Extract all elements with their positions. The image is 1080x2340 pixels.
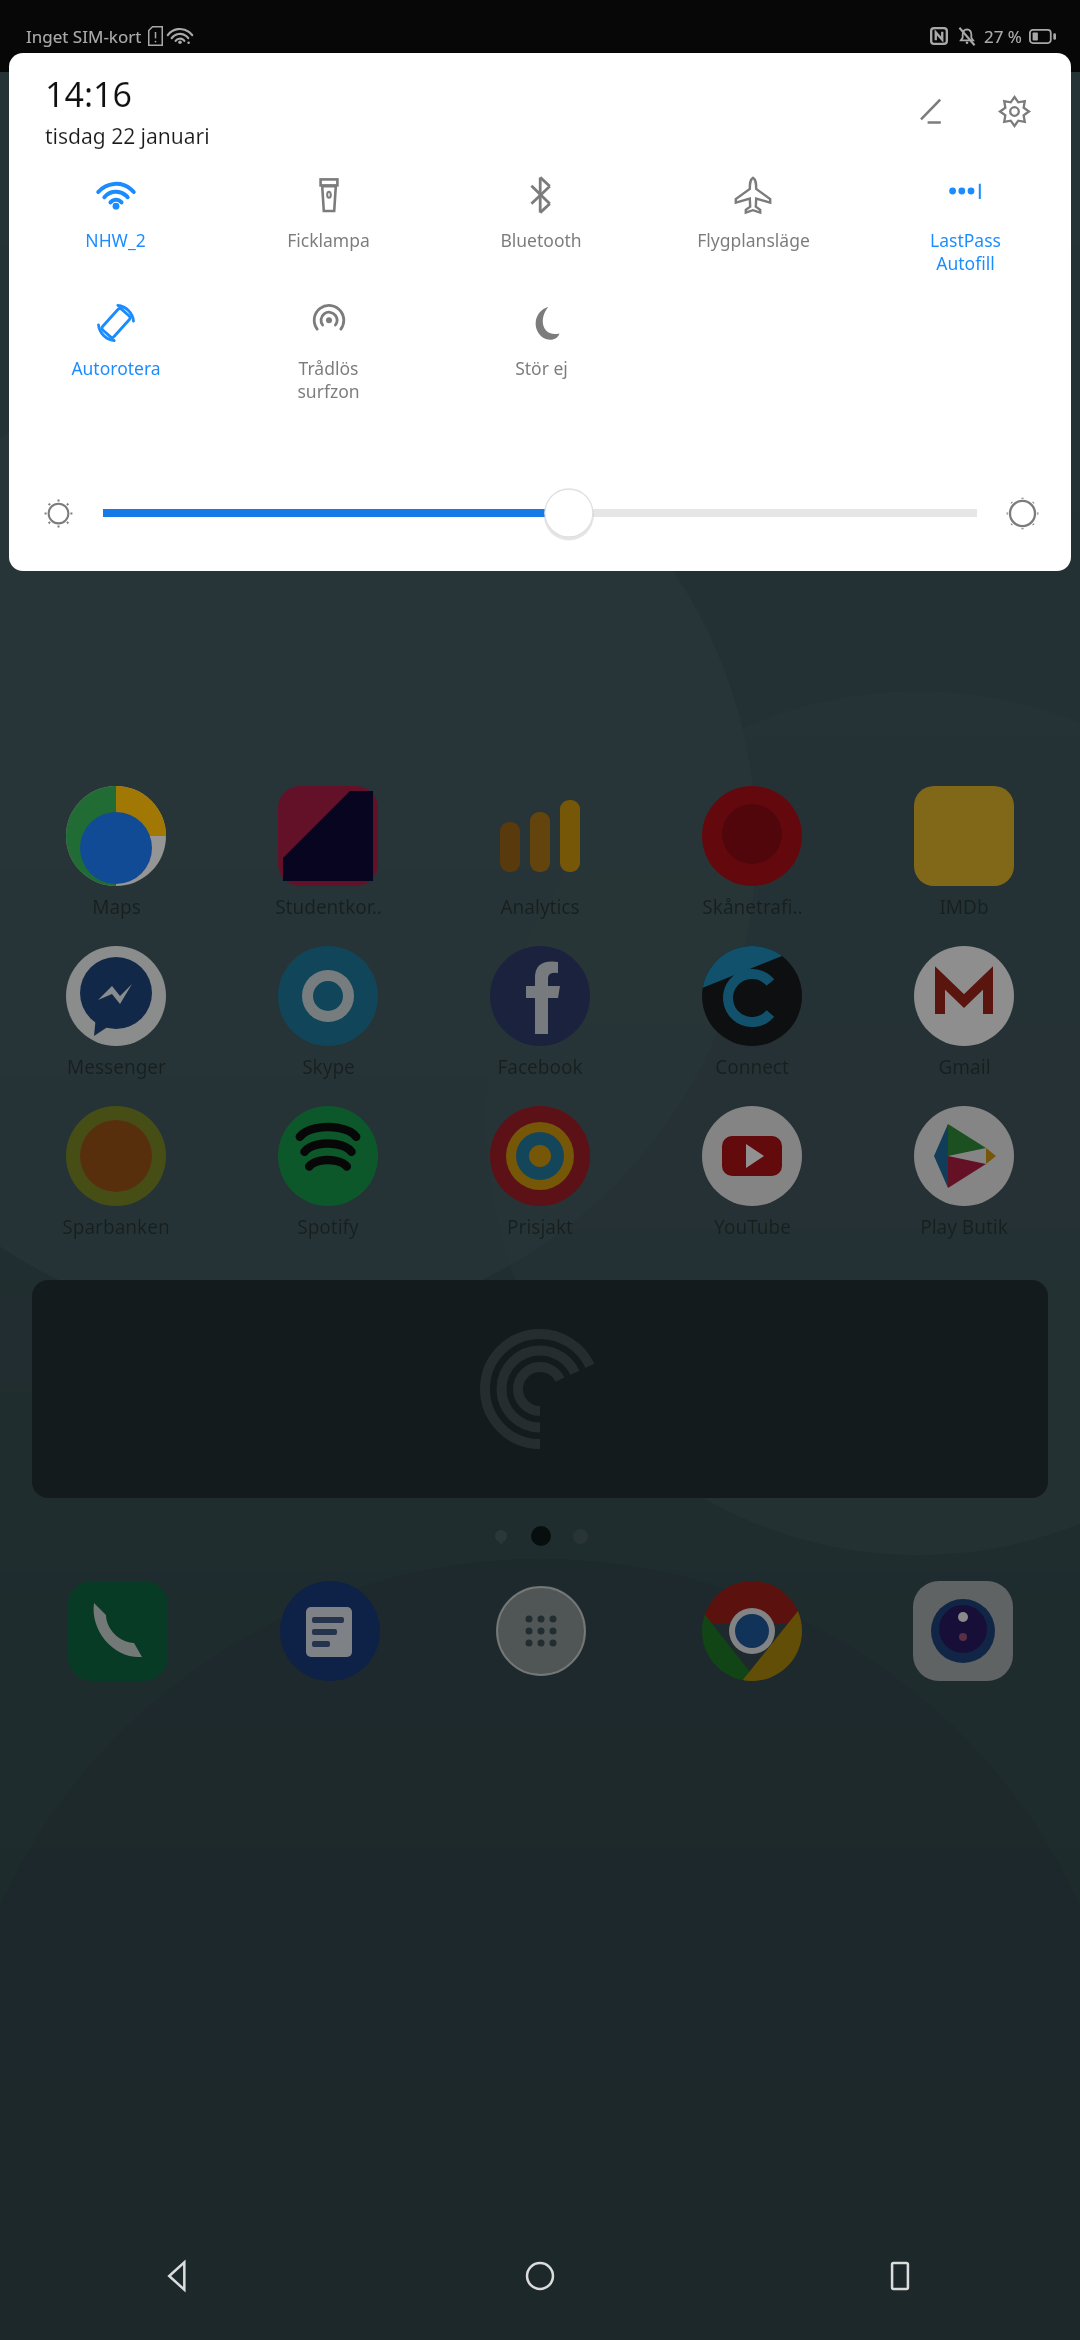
staticText: Autorotera: [71, 356, 161, 380]
button[interactable]: Skånetrafi..: [646, 786, 858, 920]
staticText: Flygplansläge: [697, 228, 810, 252]
button[interactable]: Analytics: [434, 786, 646, 920]
button[interactable]: Messenger: [10, 946, 222, 1080]
staticText: Spotify: [297, 1214, 359, 1240]
button[interactable]: Recents: [720, 2212, 1080, 2340]
staticText: Messenger: [67, 1054, 166, 1080]
staticText: Inget SIM-kort: [26, 25, 142, 48]
staticText: tisdag 22 januari: [45, 122, 210, 151]
staticText: Trådlös surfzon: [297, 356, 360, 403]
staticText: YouTube: [714, 1214, 791, 1240]
button[interactable]: All apps: [435, 1572, 646, 1690]
button[interactable]: Messages: [224, 1572, 435, 1690]
staticText: Bluetooth: [500, 228, 582, 252]
button[interactable]: Chrome: [646, 1572, 857, 1690]
button[interactable]: Studentkor..: [222, 786, 434, 920]
staticText: LastPass Autofill: [930, 228, 1001, 275]
button[interactable]: Connect: [646, 946, 858, 1080]
staticText: Skånetrafi..: [702, 894, 803, 920]
button[interactable]: Settings: [987, 84, 1041, 138]
button[interactable]: Gmail: [858, 946, 1070, 1080]
button[interactable]: Spotify: [222, 1106, 434, 1240]
button[interactable]: YouTube: [646, 1106, 858, 1240]
button[interactable]: NHW_2: [9, 169, 222, 289]
button[interactable]: Ficklampa: [222, 169, 435, 289]
staticText: Connect: [715, 1054, 789, 1080]
button[interactable]: LastPass Autofill: [859, 169, 1071, 289]
button[interactable]: Stör ej: [435, 297, 647, 417]
button[interactable]: Maps: [10, 786, 222, 920]
button[interactable]: Flygplansläge: [647, 169, 859, 289]
staticText: NHW_2: [85, 228, 146, 252]
button[interactable]: Trådlös surfzon: [222, 297, 435, 417]
button[interactable]: High brightness: [997, 488, 1047, 538]
button[interactable]: [103, 488, 977, 538]
button[interactable]: Camera: [857, 1572, 1068, 1690]
button[interactable]: Low brightness: [33, 488, 83, 538]
button[interactable]: Phone: [12, 1572, 224, 1690]
staticText: Skype: [302, 1054, 355, 1080]
staticText: 14:16: [45, 71, 132, 117]
button[interactable]: Prisjakt: [434, 1106, 646, 1240]
button[interactable]: IMDb: [858, 786, 1070, 920]
button[interactable]: Home: [360, 2212, 720, 2340]
button[interactable]: Autorotera: [9, 297, 222, 417]
staticText: Facebook: [497, 1054, 583, 1080]
staticText: Stör ej: [515, 356, 568, 380]
button[interactable]: Facebook: [434, 946, 646, 1080]
staticText: Ficklampa: [287, 228, 370, 252]
button[interactable]: Play Butik: [858, 1106, 1070, 1240]
staticText: Prisjakt: [507, 1214, 573, 1240]
staticText: Play Butik: [920, 1214, 1008, 1240]
button[interactable]: Sparbanken: [10, 1106, 222, 1240]
staticText: IMDb: [939, 894, 989, 920]
button[interactable]: Bluetooth: [435, 169, 647, 289]
staticText: 27 %: [984, 25, 1022, 48]
button[interactable]: Back: [0, 2212, 360, 2340]
staticText: Studentkor..: [275, 894, 382, 920]
staticText: Gmail: [938, 1054, 991, 1080]
button[interactable]: Edit: [903, 84, 957, 138]
staticText: Maps: [92, 894, 141, 920]
button[interactable]: Skype: [222, 946, 434, 1080]
staticText: Analytics: [500, 894, 580, 920]
staticText: Sparbanken: [62, 1214, 170, 1240]
